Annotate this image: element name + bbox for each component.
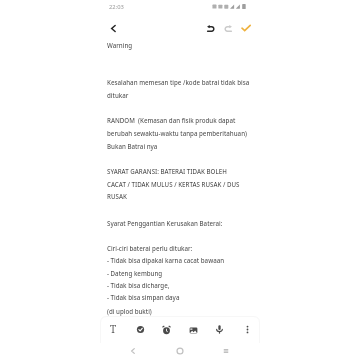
staticText: Ciri-ciri baterai perlu ditukar:: [107, 244, 193, 252]
staticText: - Dateng kembung: [107, 269, 163, 277]
button[interactable]: More options: [240, 322, 254, 336]
staticText: - Tidak bisa dipakai karna cacat bawaan: [107, 256, 225, 264]
button[interactable]: Recent apps: [218, 343, 234, 359]
button[interactable]: Save note: [238, 20, 254, 36]
staticText: RANDOM (Kemasan dan fisik produk dapat: [107, 116, 236, 124]
button[interactable]: Home: [172, 343, 188, 359]
staticText: T: [110, 322, 117, 336]
button[interactable]: Back: [105, 20, 121, 36]
button[interactable]: Add image: [186, 323, 200, 337]
staticText: 22:03: [109, 3, 124, 11]
staticText: Bukan Batrai nya: [107, 142, 158, 150]
staticText: Syarat Penggantian Kerusakan Baterai:: [107, 219, 223, 227]
staticText: Warning: [107, 41, 133, 49]
staticText: CACAT / TIDAK MULUS / KERTAS RUSAK / DUS: [107, 180, 240, 188]
staticText: RUSAK: [107, 192, 127, 200]
button[interactable]: Text format: [106, 322, 120, 336]
button[interactable]: Back: [125, 343, 141, 359]
staticText: SYARAT GARANSI: BATERAI TIDAK BOLEH: [107, 167, 227, 175]
button[interactable]: Undo: [202, 20, 218, 36]
staticText: (di uplod bukti): [107, 307, 152, 315]
staticText: berubah sewaktu-waktu tanpa pemberitahua…: [107, 129, 247, 137]
button[interactable]: Redo: [220, 20, 236, 36]
staticText: - Tidak bisa simpan daya: [107, 293, 180, 301]
staticText: ditukar: [107, 91, 129, 99]
button[interactable]: Reminder: [159, 322, 173, 336]
staticText: Kesalahan memesan tipe /kode batrai tida…: [107, 78, 250, 86]
staticText: - Tidak bisa dicharge,: [107, 281, 170, 289]
button[interactable]: Checklist: [133, 322, 147, 336]
button[interactable]: Voice note: [212, 322, 226, 336]
